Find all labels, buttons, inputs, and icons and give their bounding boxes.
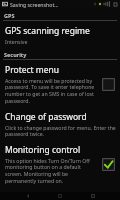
button[interactable]: Monitoring control <box>0 141 120 188</box>
button[interactable]: GPS scanning regime <box>0 22 120 48</box>
staticText: Click to change password for menu. Enter… <box>5 124 116 138</box>
staticText: Security <box>4 51 27 58</box>
staticText: Access to menu will be protected by pass… <box>5 77 98 105</box>
staticText: Saving screenshot... <box>10 1 59 8</box>
button[interactable]: Home <box>55 192 65 200</box>
staticText: Monitoring control <box>5 144 81 156</box>
button[interactable]: Protect menu <box>0 61 120 108</box>
button[interactable]: Change of password <box>0 108 120 141</box>
staticText: GPS <box>4 12 15 19</box>
staticText: GPS scanning regime <box>5 25 90 37</box>
button[interactable]: Monitoring control toggle <box>101 157 116 172</box>
button[interactable]: Protect menu toggle <box>101 77 116 92</box>
staticText: Change of password <box>5 111 87 123</box>
staticText: Protect menu <box>5 64 60 76</box>
button[interactable]: Recent apps <box>88 192 98 200</box>
button[interactable]: Back <box>23 192 33 200</box>
staticText: This option hides Turn On/Turn Off monit… <box>5 157 98 185</box>
staticText: Intensive <box>5 38 28 45</box>
